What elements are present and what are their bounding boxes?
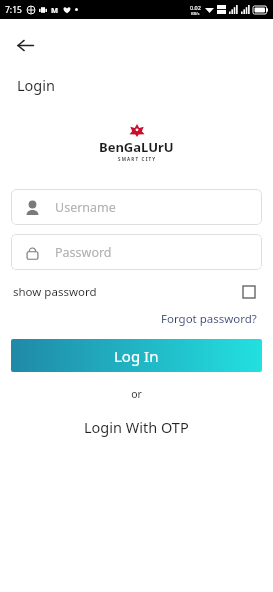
staticText: Username (55, 199, 116, 216)
staticText: Login (17, 75, 55, 95)
staticText: Forgot password? (161, 311, 257, 327)
staticText: KB/s (191, 11, 200, 16)
staticText: M (51, 5, 59, 15)
button[interactable]: Password (11, 234, 262, 270)
button[interactable]: Login With OTP (0, 413, 273, 441)
staticText: 0.02 (190, 4, 201, 11)
staticText: Password (55, 244, 112, 261)
button[interactable]: Back (6, 26, 44, 64)
button[interactable]: Forgot password? (158, 308, 260, 330)
staticText: Login With OTP (84, 417, 189, 437)
staticText: Log In (114, 346, 159, 366)
staticText: 7:15 (5, 4, 22, 16)
staticText: or (0, 387, 273, 401)
staticText: BenGaLUrU (99, 138, 174, 156)
staticText: show password (13, 284, 97, 300)
button[interactable]: Show password checkbox (238, 281, 260, 303)
button[interactable]: Log In (11, 339, 262, 372)
staticText: S M A R T C I T Y (118, 156, 156, 162)
button[interactable]: Username (11, 189, 262, 225)
